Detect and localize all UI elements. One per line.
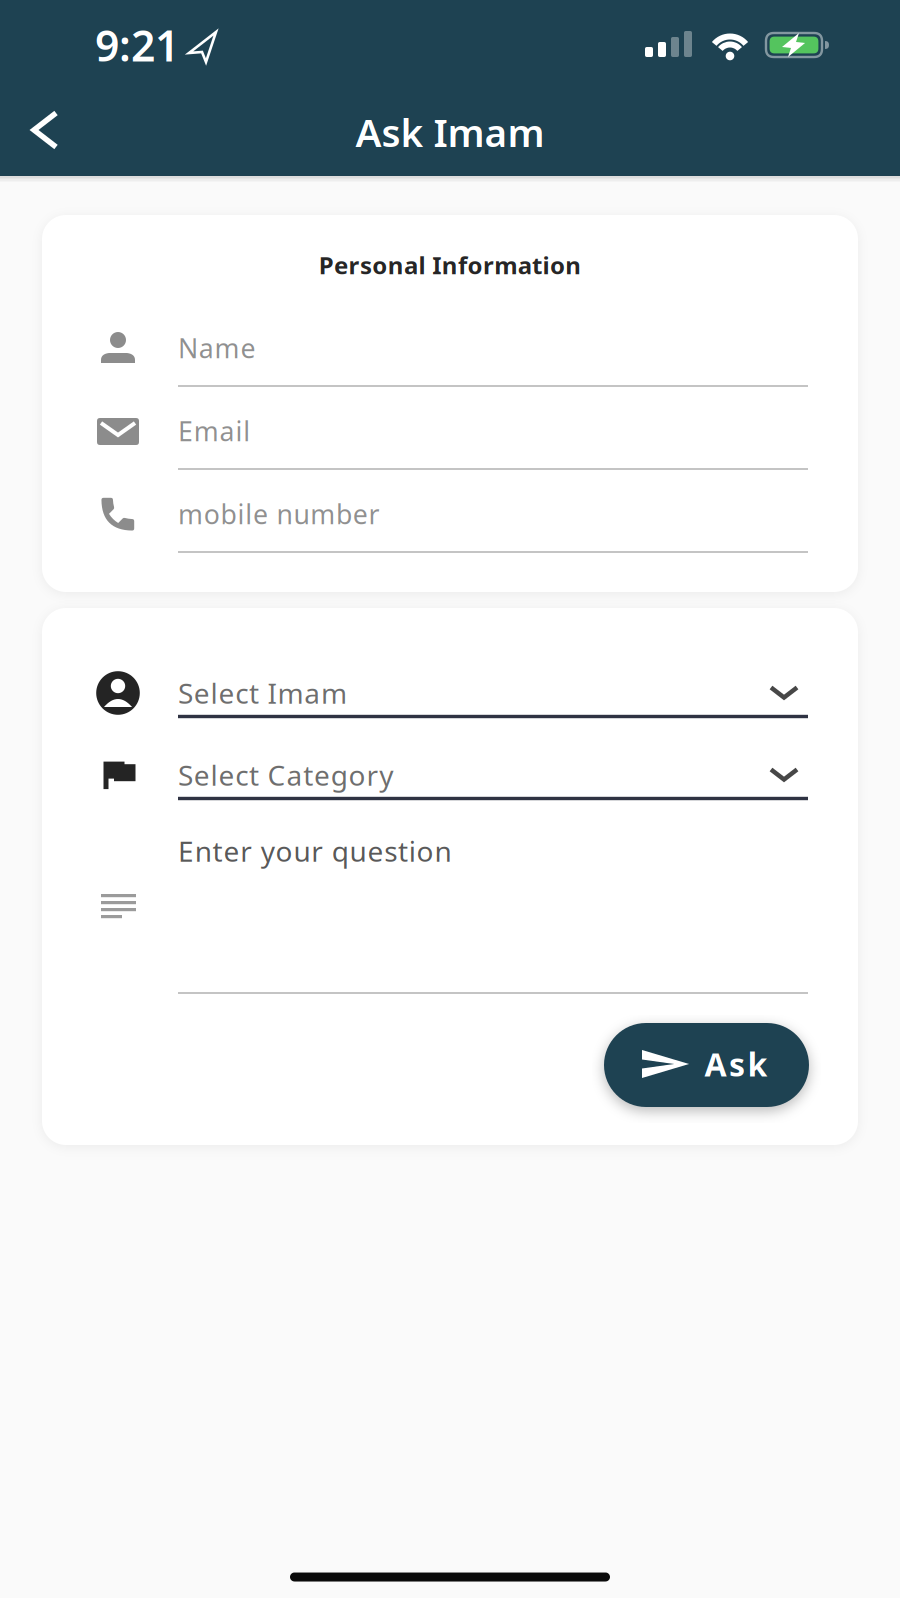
button[interactable] — [12, 107, 92, 153]
staticText: Ask — [704, 1043, 767, 1085]
button[interactable]: Select Imam — [78, 667, 808, 729]
button[interactable]: Name — [78, 307, 808, 390]
staticText: Name — [178, 330, 255, 366]
button[interactable]: Email — [78, 390, 808, 473]
staticText: mobile number — [178, 496, 380, 532]
staticText: Enter your question — [178, 832, 451, 870]
staticText: Email — [178, 413, 250, 449]
staticText: Select Category — [178, 756, 393, 794]
staticText: Select Imam — [178, 674, 347, 712]
button[interactable]: Enter your question — [78, 820, 808, 1000]
staticText: Ask Imam — [355, 106, 544, 158]
staticText: 9:21 — [95, 17, 179, 73]
staticText: Personal Information — [319, 249, 581, 281]
button[interactable]: Select Category — [78, 749, 808, 811]
button[interactable]: mobile number — [78, 473, 808, 556]
button[interactable]: Ask — [604, 1023, 809, 1107]
